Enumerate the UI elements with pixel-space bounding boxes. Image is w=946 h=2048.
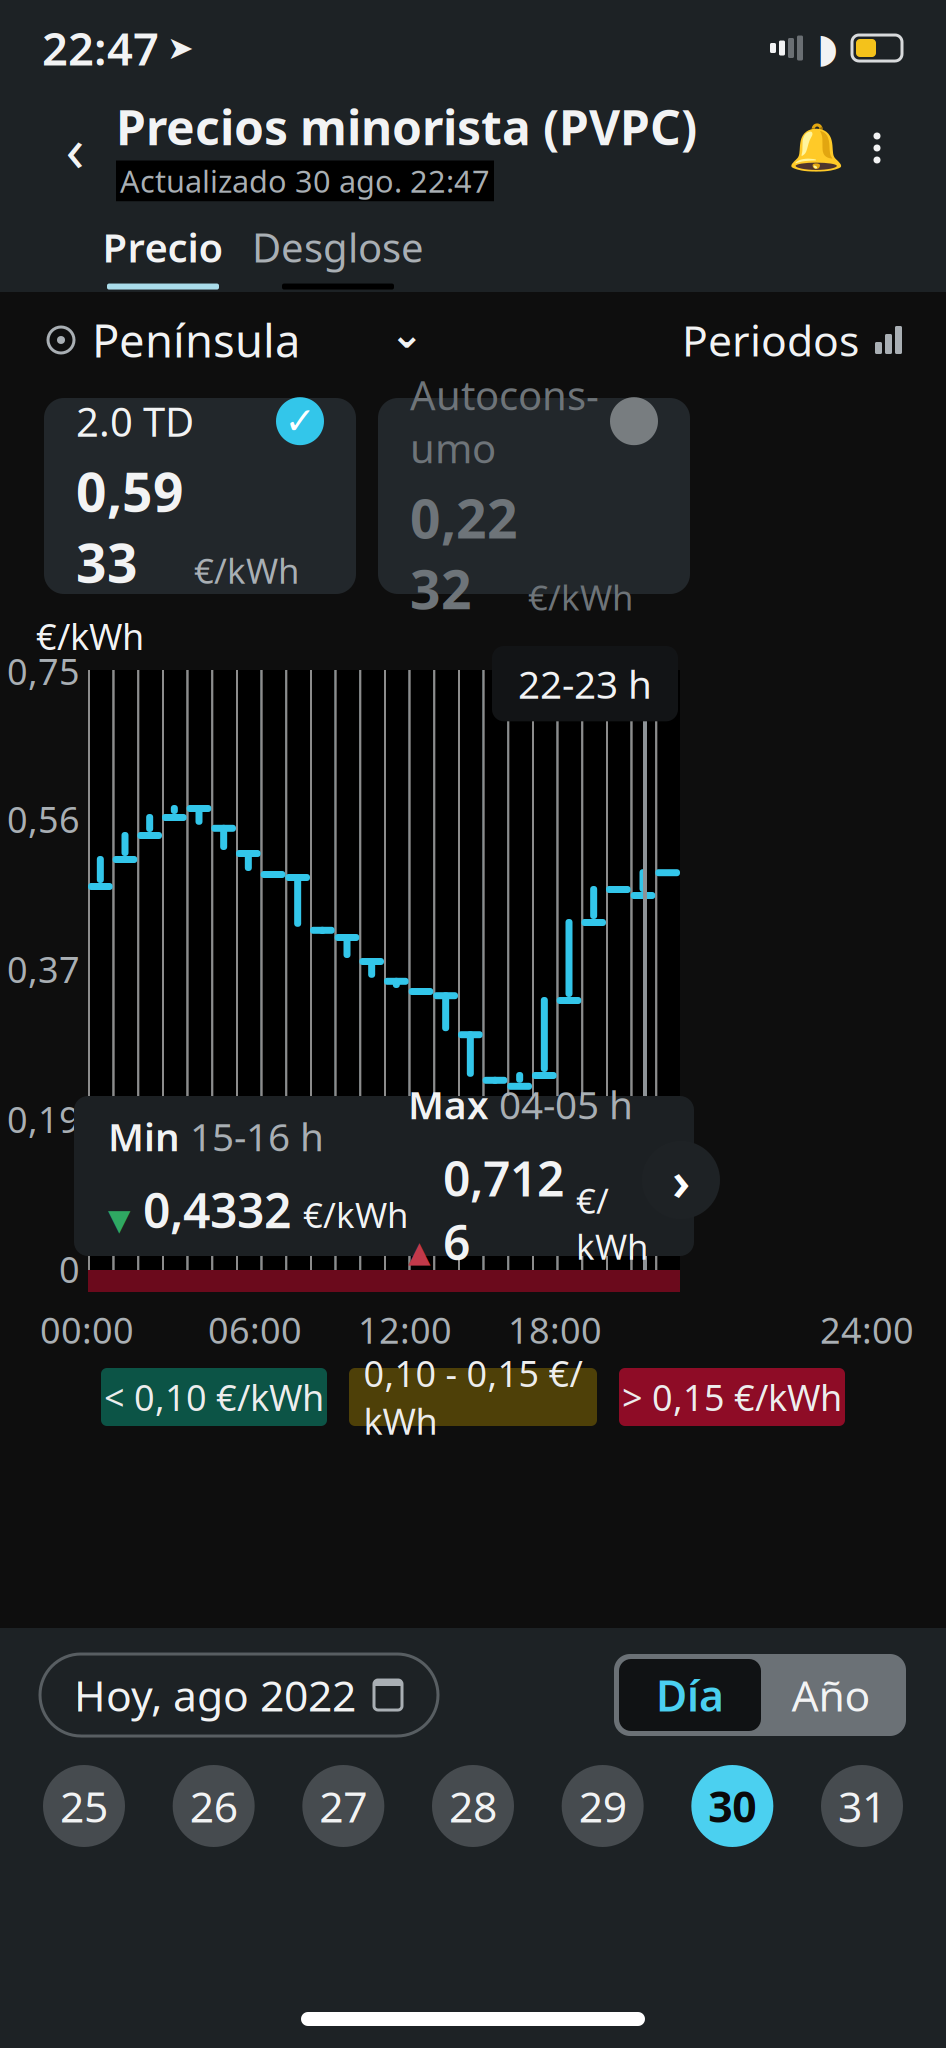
staticText: €/kWh (194, 547, 299, 593)
staticText: 0,5933 (76, 456, 184, 597)
staticText: 22-23 h (518, 658, 652, 709)
staticText: Max (408, 1079, 489, 1130)
staticText: Autoconsumo (410, 368, 599, 474)
button[interactable]: Back (40, 113, 110, 183)
staticText: 0,37 (7, 945, 80, 993)
button[interactable]: 2.0 TD (44, 398, 356, 594)
button[interactable]: 31 (814, 1758, 910, 1854)
staticText: 22:47 (42, 18, 159, 78)
staticText: ▲ (408, 1235, 431, 1268)
staticText: 25 (60, 1778, 108, 1834)
button[interactable]: < 0,10 €/kWh (101, 1368, 327, 1426)
staticText: 26 (190, 1778, 238, 1834)
button[interactable]: Año (761, 1659, 901, 1731)
staticText: ⌄ (390, 311, 424, 357)
button[interactable]: 25 (36, 1758, 132, 1854)
staticText: ✓ (284, 400, 315, 442)
staticText: 0,10 - 0,15 €/kWh (363, 1349, 582, 1445)
staticText: 0,56 (7, 795, 80, 843)
staticText: Año (791, 1667, 870, 1723)
staticText: 2.0 TD (76, 395, 194, 448)
button[interactable]: Hoy, ago 2022 (40, 1654, 438, 1736)
button[interactable]: Día (619, 1659, 761, 1731)
staticText: €/kWh (303, 1191, 408, 1237)
staticText: 12:00 (358, 1306, 452, 1354)
staticText: 0,7126 (443, 1146, 564, 1273)
staticText: 04-05 h (499, 1079, 633, 1130)
staticText: 0,2232 (410, 482, 518, 624)
button[interactable]: 29 (555, 1758, 651, 1854)
staticText: Península (92, 310, 300, 370)
button[interactable]: 0,10 - 0,15 €/kWh (349, 1368, 597, 1426)
staticText: 0,75 (7, 647, 80, 695)
staticText: €/kWh (528, 574, 633, 620)
button[interactable]: 27 (295, 1758, 391, 1854)
staticText: 29 (579, 1778, 627, 1834)
staticText: Precios minorista (PVPC) (116, 95, 697, 158)
button[interactable]: Desglose (238, 202, 438, 289)
staticText: Día (656, 1667, 724, 1723)
staticText: 24:00 (820, 1306, 914, 1354)
staticText: 0,19 (7, 1095, 80, 1143)
staticText: Min (108, 1110, 180, 1162)
staticText: > 0,15 €/kWh (622, 1373, 842, 1421)
staticText: 0 (59, 1245, 80, 1293)
staticText: 🔔 (788, 122, 844, 174)
staticText: < 0,10 €/kWh (104, 1373, 324, 1421)
staticText: 06:00 (208, 1306, 302, 1354)
staticText: Periodos (682, 312, 859, 368)
staticText: 0,4332 (143, 1178, 291, 1241)
staticText: €/kWh (576, 1177, 648, 1269)
button[interactable]: Precio (88, 202, 238, 289)
staticText: ◗ (817, 25, 838, 71)
staticText: ➤ (167, 30, 194, 66)
staticText: Precio (102, 220, 223, 273)
staticText: ‹ (65, 107, 84, 189)
button[interactable]: Periodos (682, 306, 902, 374)
button[interactable]: > 0,15 €/kWh (619, 1368, 845, 1426)
button[interactable]: More options (848, 116, 906, 180)
staticText: › (672, 1145, 690, 1215)
staticText: 28 (449, 1778, 497, 1834)
button[interactable]: Alerts (784, 116, 848, 180)
button[interactable]: 28 (425, 1758, 521, 1854)
button[interactable]: Autoconsumo (378, 398, 690, 594)
staticText: Desglose (252, 220, 424, 273)
staticText: 18:00 (508, 1306, 602, 1354)
staticText: Hoy, ago 2022 (74, 1667, 356, 1723)
staticText: 15-16 h (190, 1110, 324, 1162)
staticText: ▼ (108, 1203, 131, 1237)
button[interactable]: Península (44, 304, 424, 376)
button[interactable]: Next day (638, 1137, 724, 1223)
staticText: €/kWh (36, 612, 144, 660)
staticText: 30 (708, 1778, 756, 1834)
button[interactable]: 26 (166, 1758, 262, 1854)
staticText: 00:00 (40, 1306, 134, 1354)
staticText: Actualizado 30 ago. 22:47 (120, 160, 490, 201)
staticText: 27 (319, 1778, 367, 1834)
staticText: 31 (838, 1778, 886, 1834)
button[interactable]: 30 (684, 1758, 780, 1854)
